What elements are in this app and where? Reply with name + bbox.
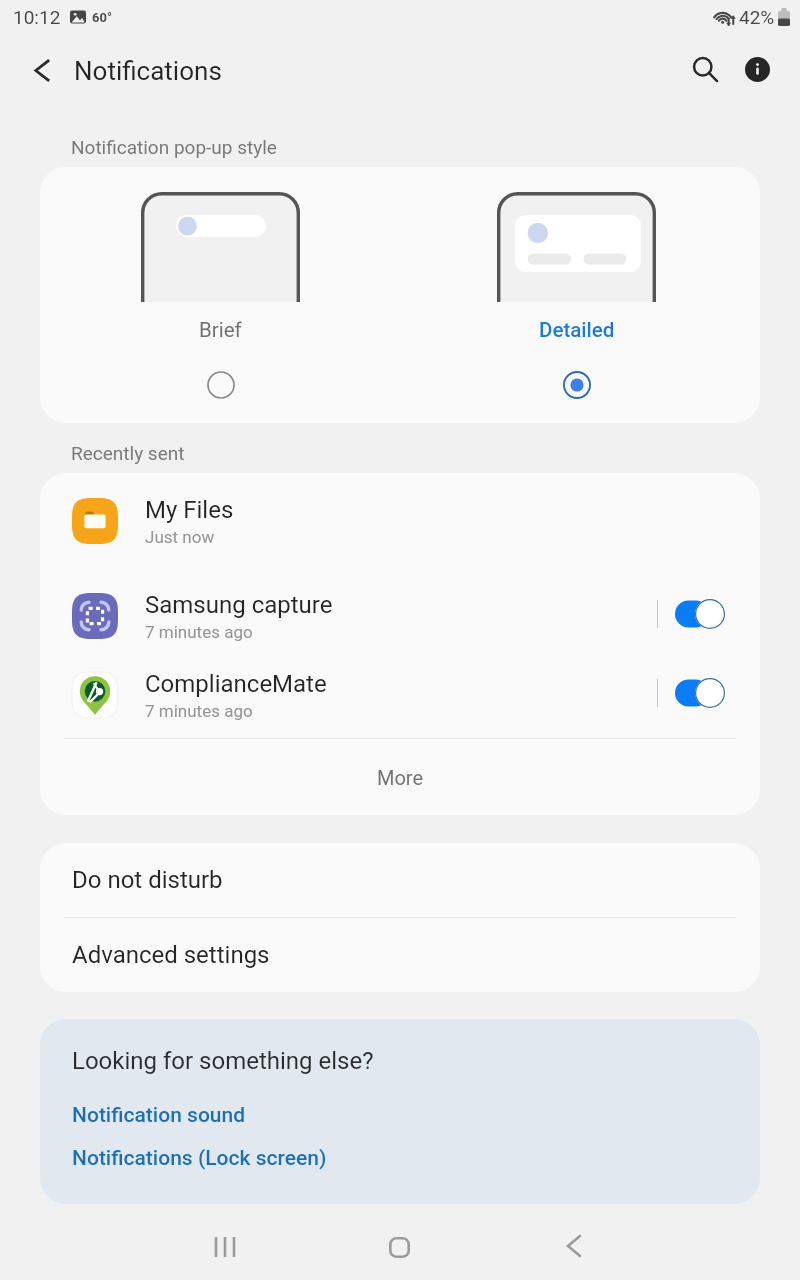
button[interactable]: Samsung capture xyxy=(40,576,760,656)
staticText: Do not disturb xyxy=(72,866,223,894)
staticText: Brief xyxy=(199,318,242,342)
staticText: ComplianceMate xyxy=(145,670,327,698)
staticText: Advanced settings xyxy=(72,941,270,969)
button[interactable]: Information xyxy=(729,41,785,97)
staticText: Recently sent xyxy=(71,442,185,464)
staticText: 7 minutes ago xyxy=(145,701,253,721)
button[interactable]: Notifications (Lock screen) xyxy=(72,1146,327,1171)
button[interactable]: ComplianceMate xyxy=(40,655,760,735)
button[interactable]: Advanced settings xyxy=(40,918,760,992)
staticText: 10:12 xyxy=(13,6,61,28)
button[interactable]: Back xyxy=(536,1208,612,1280)
staticText: Notifications xyxy=(74,56,222,86)
button[interactable]: My Files xyxy=(40,481,760,561)
staticText: Looking for something else? xyxy=(72,1047,374,1075)
button[interactable]: Search xyxy=(677,41,733,97)
staticText: 60° xyxy=(92,10,112,25)
button[interactable]: Home xyxy=(361,1209,437,1280)
staticText: Samsung capture xyxy=(145,591,333,619)
button[interactable]: Toggle notifications for ComplianceMate xyxy=(675,678,725,708)
staticText: 7 minutes ago xyxy=(145,622,253,642)
staticText: More xyxy=(377,766,424,789)
button[interactable]: Brief xyxy=(141,167,300,399)
button[interactable]: Navigate up xyxy=(14,42,70,98)
staticText: Notification pop-up style xyxy=(71,136,277,158)
button[interactable]: Detailed xyxy=(497,167,656,399)
staticText: Notifications (Lock screen) xyxy=(72,1146,327,1171)
staticText: Just now xyxy=(145,527,215,547)
button[interactable]: Toggle notifications for Samsung capture xyxy=(675,599,725,629)
button[interactable]: Do not disturb xyxy=(40,843,760,917)
staticText: 42% xyxy=(739,6,775,28)
button[interactable]: Recent apps xyxy=(187,1209,263,1280)
staticText: Detailed xyxy=(539,318,615,342)
staticText: My Files xyxy=(145,496,234,524)
button[interactable]: More xyxy=(40,739,760,815)
staticText: Notification sound xyxy=(72,1103,246,1128)
button[interactable]: Notification sound xyxy=(72,1103,246,1128)
